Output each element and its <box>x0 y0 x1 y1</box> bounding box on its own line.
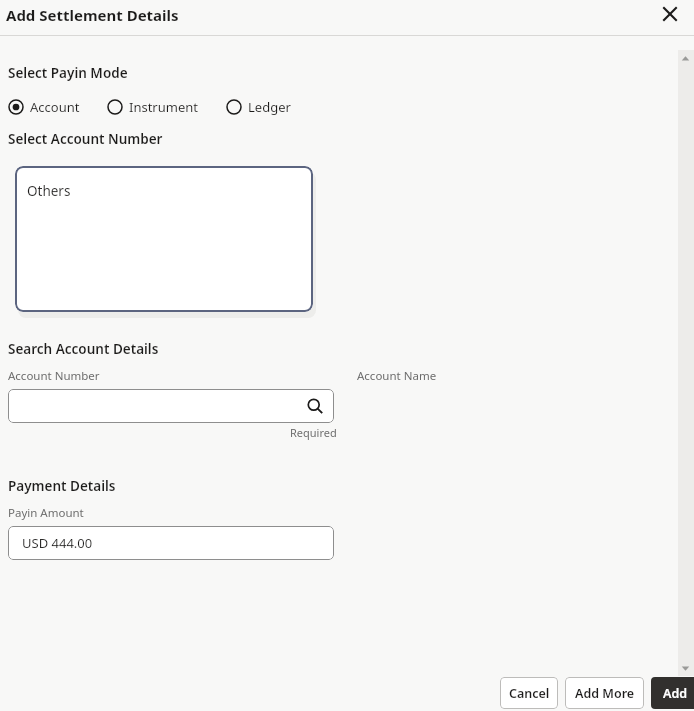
button[interactable]: Search <box>304 395 326 417</box>
staticText: Cancel <box>509 685 550 702</box>
button[interactable]: Account <box>8 96 80 118</box>
staticText: Add More <box>575 685 635 702</box>
button[interactable]: Cancel <box>500 677 558 709</box>
button[interactable]: Instrument <box>107 96 198 118</box>
staticText: Select Account Number <box>8 130 163 148</box>
staticText: Search Account Details <box>8 340 159 358</box>
staticText: Add Settlement Details <box>6 5 179 25</box>
button[interactable]: Close <box>655 0 685 29</box>
staticText: USD 444.00 <box>22 534 93 552</box>
staticText: Instrument <box>129 98 198 116</box>
staticText: Ledger <box>248 98 291 116</box>
button[interactable]: Add More <box>565 677 644 709</box>
staticText: Account Number <box>8 368 100 384</box>
button[interactable]: Others <box>15 166 313 312</box>
staticText: Account Name <box>357 368 437 384</box>
button[interactable]: Ledger <box>226 96 291 118</box>
staticText: Payment Details <box>8 477 116 495</box>
staticText: Required <box>290 425 337 440</box>
button[interactable]: Add <box>651 677 694 709</box>
staticText: Add <box>663 685 688 702</box>
button[interactable]: USD 444.00 <box>8 526 334 560</box>
button[interactable]: Search <box>8 389 334 423</box>
staticText: Account <box>30 98 80 116</box>
staticText: Others <box>27 182 71 200</box>
staticText: Select Payin Mode <box>8 64 128 82</box>
staticText: Payin Amount <box>8 505 84 521</box>
